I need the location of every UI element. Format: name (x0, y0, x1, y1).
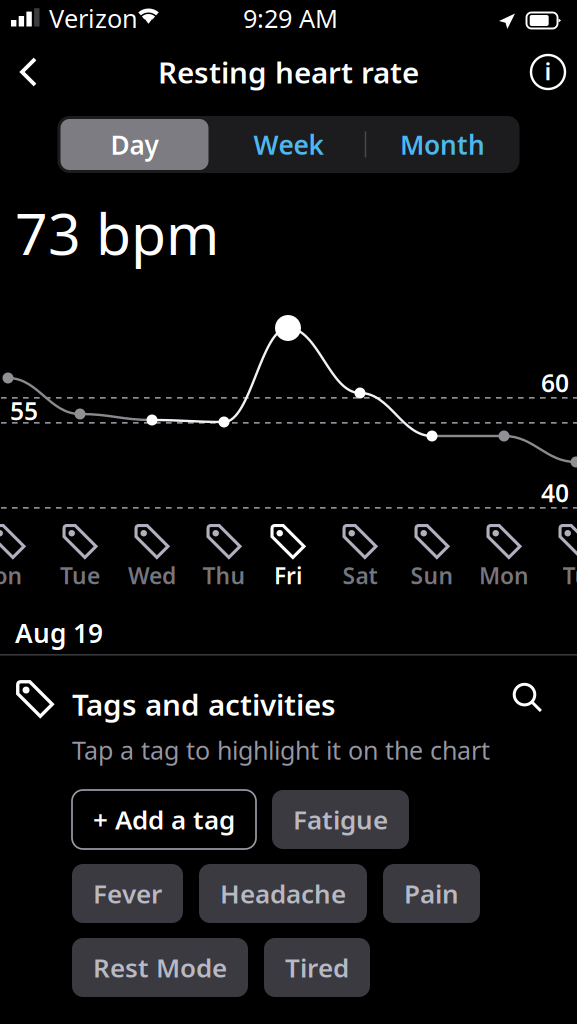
staticText: Resting heart rate (158, 52, 419, 92)
staticText: Fever (93, 876, 162, 911)
staticText: Rest Mode (93, 950, 227, 985)
staticText: Sat (342, 560, 377, 591)
staticText: 55 (10, 394, 38, 428)
button[interactable]: Tired (264, 938, 370, 997)
staticText: 40 (541, 476, 569, 510)
button[interactable]: Search tags (506, 676, 550, 720)
staticText: Tired (285, 950, 349, 985)
staticText: Fri (274, 560, 302, 591)
staticText: Verizon (49, 1, 138, 35)
button[interactable]: Headache (199, 864, 367, 923)
staticText: Headache (220, 876, 346, 911)
staticText: Wed (128, 560, 176, 591)
button[interactable]: Pain (383, 864, 480, 923)
button[interactable]: Week (211, 116, 365, 173)
staticText: Pain (404, 876, 459, 911)
staticText: Tu (562, 560, 577, 591)
staticText: Day (110, 127, 158, 162)
staticText: + Add a tag (93, 802, 235, 837)
button[interactable]: Fatigue (272, 790, 409, 849)
button[interactable]: + Add a tag (72, 790, 256, 849)
button[interactable]: Day (57, 116, 211, 173)
staticText: Fatigue (293, 802, 388, 837)
staticText: Thu (202, 560, 245, 591)
button[interactable]: Information (523, 47, 573, 97)
staticText: Sun (410, 560, 453, 591)
staticText: 9:29 AM (243, 1, 338, 35)
staticText: Week (253, 127, 323, 162)
button[interactable]: Month (365, 116, 519, 173)
staticText: 73 bpm (15, 194, 219, 272)
staticText: on (0, 560, 22, 591)
staticText: i (544, 55, 551, 87)
staticText: Month (400, 127, 485, 162)
button[interactable]: Back (4, 47, 54, 97)
button[interactable]: Rest Mode (72, 938, 248, 997)
staticText: 60 (541, 366, 569, 400)
button[interactable]: Fever (72, 864, 183, 923)
staticText: Mon (479, 560, 529, 591)
staticText: Tags and activities (72, 684, 336, 724)
staticText: Tue (60, 560, 100, 591)
staticText: Tap a tag to highlight it on the chart (72, 733, 490, 767)
staticText: Aug 19 (15, 615, 103, 651)
